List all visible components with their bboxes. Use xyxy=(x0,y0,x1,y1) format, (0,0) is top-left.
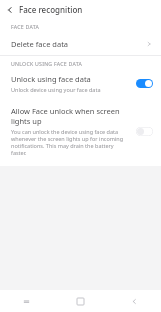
button[interactable]: Allow Face unlock when screen lights up … xyxy=(136,127,153,136)
button[interactable]: Home xyxy=(53,290,107,312)
staticText: Delete face data xyxy=(11,39,69,49)
staticText: UNLOCK USING FACE DATA xyxy=(11,60,82,67)
staticText: Allow Face unlock when screen lights up xyxy=(11,106,130,126)
button[interactable]: Navigate up xyxy=(0,0,19,19)
staticText: Unlock device using your face data xyxy=(11,86,101,93)
button[interactable]: Allow Face unlock when screen lights up xyxy=(0,104,161,162)
staticText: Unlock using face data xyxy=(11,74,91,84)
button[interactable]: Unlock using face data xyxy=(0,70,161,99)
staticText: You can unlock the device using face dat… xyxy=(11,128,130,156)
button[interactable]: Recents xyxy=(0,290,53,312)
staticText: Face recognition xyxy=(19,4,83,15)
button[interactable]: Delete face data xyxy=(0,33,161,55)
staticText: FACE DATA xyxy=(11,23,40,30)
button[interactable]: Unlock using face data toggle, on xyxy=(136,79,153,88)
button[interactable]: Back xyxy=(107,290,161,312)
